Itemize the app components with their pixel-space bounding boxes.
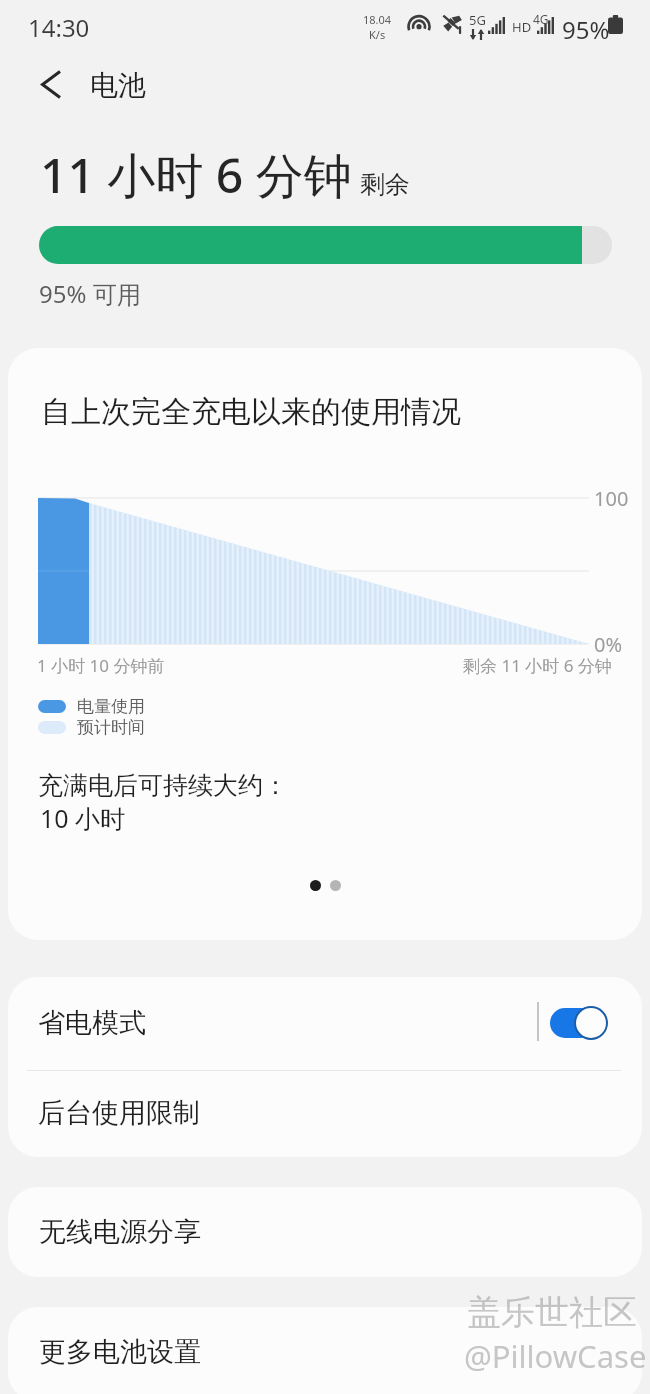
button[interactable]: Power saving toggle	[546, 1002, 608, 1042]
staticText: 充满电后可持续大约：	[38, 770, 288, 801]
staticText: 5G	[469, 11, 486, 29]
staticText: 自上次完全充电以来的使用情况	[41, 393, 461, 431]
staticText: 预计时间	[77, 717, 145, 738]
staticText: 剩余 11 小时 6 分钟	[463, 654, 612, 677]
staticText: 0%	[594, 631, 623, 658]
staticText: 10 小时	[40, 801, 126, 835]
button[interactable]: 后台使用限制	[8, 1069, 642, 1157]
staticText: 18.04	[363, 12, 392, 27]
staticText: 11 小时 6 分钟	[40, 142, 352, 208]
staticText: 省电模式	[38, 1006, 146, 1040]
staticText: 95%	[562, 13, 610, 46]
staticText: 盖乐世社区	[467, 1291, 637, 1334]
staticText: 剩余	[360, 169, 410, 200]
staticText: 更多电池设置	[39, 1335, 201, 1369]
staticText: 电量使用	[77, 696, 145, 717]
staticText: 95% 可用	[39, 277, 141, 310]
staticText: 100	[594, 485, 629, 512]
staticText: 后台使用限制	[38, 1096, 200, 1130]
staticText: 电池	[90, 68, 146, 103]
button[interactable]: 无线电源分享	[8, 1187, 642, 1277]
button[interactable]: Back	[23, 56, 79, 112]
staticText: 4G	[533, 11, 549, 27]
staticText: 1 小时 10 分钟前	[37, 654, 165, 677]
staticText: 无线电源分享	[39, 1215, 201, 1249]
staticText: @PillowCase	[464, 1335, 647, 1377]
button[interactable]: 更多电池设置	[8, 1307, 642, 1394]
button[interactable]: 省电模式	[8, 977, 642, 1069]
staticText: 14:30	[28, 11, 90, 44]
staticText: HD	[512, 18, 532, 36]
staticText: K/s	[369, 27, 386, 42]
